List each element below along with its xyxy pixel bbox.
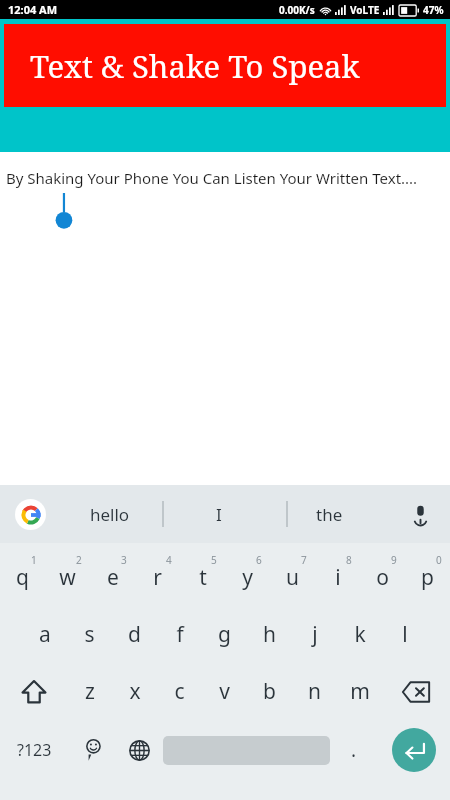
button[interactable]: x (112, 663, 157, 720)
staticText: 9 (391, 553, 397, 567)
staticText: z (85, 677, 95, 706)
button[interactable]: f (157, 606, 202, 663)
button[interactable]: k (337, 606, 382, 663)
button[interactable]: Enter (377, 720, 450, 780)
button[interactable]: l (382, 606, 427, 663)
button[interactable]: hello (56, 485, 164, 543)
staticText: . (351, 737, 357, 763)
staticText: r (153, 563, 162, 592)
button[interactable]: w (45, 549, 90, 606)
button[interactable]: p (405, 549, 450, 606)
button[interactable]: Emoji and comma (69, 720, 116, 780)
staticText: u (286, 563, 299, 592)
button[interactable]: v (202, 663, 247, 720)
button[interactable]: j (292, 606, 337, 663)
staticText: 3 (121, 553, 127, 567)
staticText: v (219, 677, 230, 706)
staticText: c (174, 677, 185, 706)
button[interactable]: the (274, 485, 384, 543)
staticText: 6 (256, 553, 262, 567)
button[interactable]: q (0, 549, 45, 606)
staticText: p (421, 563, 434, 592)
staticText: 4 (166, 553, 172, 567)
staticText: w (59, 563, 76, 592)
staticText: i (335, 563, 341, 592)
staticText: l (402, 620, 408, 649)
staticText: ?123 (17, 739, 52, 761)
button[interactable]: h (247, 606, 292, 663)
staticText: I (216, 503, 222, 526)
button[interactable]: ?123 (0, 720, 69, 780)
staticText: 5 (211, 553, 217, 567)
button[interactable]: z (67, 663, 112, 720)
button[interactable]: Voice input (400, 494, 440, 534)
button[interactable]: e (90, 549, 135, 606)
staticText: n (308, 677, 321, 706)
button[interactable]: . (330, 720, 377, 780)
staticText: VoLTE (350, 3, 380, 17)
staticText: e (107, 563, 119, 592)
staticText: the (316, 503, 343, 526)
button[interactable]: Backspace (382, 663, 450, 720)
button[interactable]: n (292, 663, 337, 720)
button[interactable]: m (337, 663, 382, 720)
staticText: f (176, 620, 184, 649)
staticText: 7 (301, 553, 307, 567)
button[interactable]: Change language (116, 720, 163, 780)
staticText: q (16, 563, 29, 592)
button[interactable]: c (157, 663, 202, 720)
button[interactable]: i (315, 549, 360, 606)
button[interactable]: Shift (0, 663, 67, 720)
staticText: m (350, 677, 370, 706)
staticText: 8 (346, 553, 352, 567)
button[interactable]: u (270, 549, 315, 606)
staticText: t (199, 563, 207, 592)
staticText: Text & Shake To Speak (30, 45, 360, 87)
staticText: 2 (76, 553, 82, 567)
button[interactable]: By Shaking Your Phone You Can Listen You… (6, 168, 442, 188)
staticText: j (312, 620, 318, 649)
button[interactable]: d (112, 606, 157, 663)
staticText: hello (90, 503, 130, 526)
staticText: o (376, 563, 389, 592)
staticText: g (218, 620, 231, 649)
staticText: x (129, 677, 141, 706)
button[interactable]: Text & Shake To Speak (4, 24, 446, 107)
button[interactable]: Space (163, 720, 330, 780)
button[interactable]: s (67, 606, 112, 663)
staticText: a (39, 620, 51, 649)
staticText: 47% (423, 3, 444, 17)
button[interactable]: a (22, 606, 67, 663)
button[interactable]: r (135, 549, 180, 606)
button[interactable]: g (202, 606, 247, 663)
staticText: d (128, 620, 141, 649)
staticText: y (242, 563, 253, 592)
staticText: 12:04 AM (8, 2, 58, 17)
staticText: b (263, 677, 276, 706)
button[interactable]: b (247, 663, 292, 720)
staticText: By Shaking Your Phone You Can Listen You… (6, 168, 418, 188)
button[interactable]: I (164, 485, 274, 543)
button[interactable]: y (225, 549, 270, 606)
button[interactable]: Google (15, 499, 46, 530)
staticText: 0.00K/s (279, 3, 315, 17)
staticText: k (354, 620, 366, 649)
button[interactable]: t (180, 549, 225, 606)
staticText: 1 (31, 553, 37, 567)
button[interactable]: o (360, 549, 405, 606)
staticText: 0 (436, 553, 442, 567)
staticText: s (84, 620, 95, 649)
staticText: h (263, 620, 276, 649)
